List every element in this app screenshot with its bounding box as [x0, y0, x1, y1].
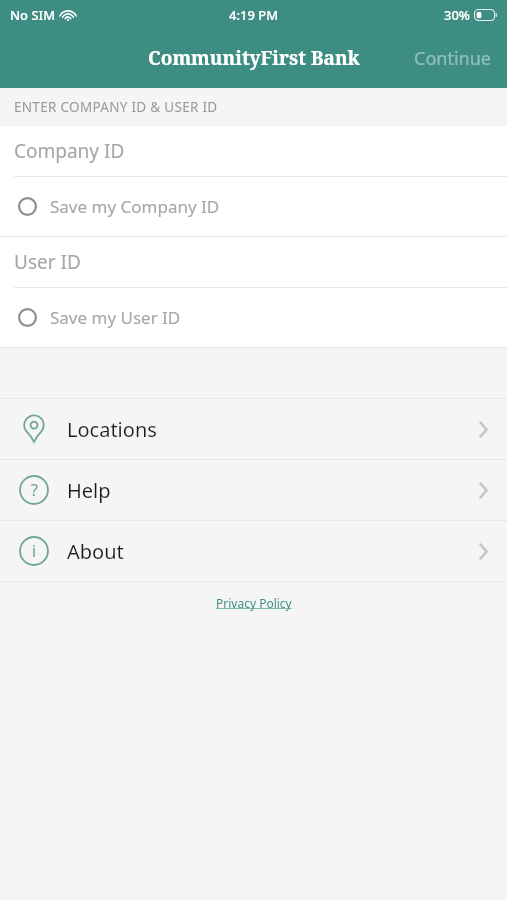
staticText: User ID — [14, 249, 81, 275]
staticText: Privacy Policy — [216, 595, 292, 611]
button[interactable]: Help — [0, 460, 507, 520]
staticText: i — [32, 540, 37, 562]
button[interactable]: Continue — [398, 29, 507, 88]
staticText: Save my User ID — [50, 306, 181, 329]
button[interactable]: Privacy Policy — [212, 593, 296, 613]
button[interactable]: Save my Company ID — [0, 177, 507, 236]
button[interactable]: Save my User ID — [0, 288, 507, 347]
staticText: Continue — [414, 46, 491, 71]
staticText: CommunityFirst Bank — [148, 45, 360, 71]
staticText: ? — [31, 479, 38, 501]
other: About — [19, 536, 49, 566]
button[interactable]: Locations — [0, 399, 507, 459]
staticText: Help — [67, 477, 478, 504]
button[interactable]: User ID — [0, 237, 507, 287]
other: Help — [19, 475, 49, 505]
staticText: Company ID — [14, 138, 125, 164]
staticText: 30% — [444, 6, 470, 24]
staticText: Save my Company ID — [50, 195, 220, 218]
staticText: 4:19 PM — [229, 6, 279, 24]
staticText: About — [67, 538, 478, 565]
staticText: Locations — [67, 416, 478, 443]
button[interactable]: About — [0, 521, 507, 581]
button[interactable]: Company ID — [0, 126, 507, 176]
staticText: ENTER COMPANY ID & USER ID — [14, 98, 218, 116]
other: Locations — [19, 414, 49, 444]
staticText: No SIM — [10, 6, 56, 24]
